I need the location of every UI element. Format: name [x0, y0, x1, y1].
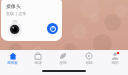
staticText: 智能 — [85, 61, 93, 66]
staticText: 发现 — [59, 61, 67, 66]
staticText: 商城 — [34, 61, 42, 66]
staticText: 我的家 — [7, 61, 18, 66]
button[interactable]: 发现 — [50, 50, 76, 68]
staticText: 在线 | 正常 — [6, 11, 27, 16]
button[interactable]: Camera device — [6, 19, 24, 37]
staticText: 我的 — [111, 61, 119, 66]
button[interactable]: 我的 — [102, 50, 128, 68]
button[interactable]: 摄像头 — [1, 0, 62, 41]
button[interactable]: 商城 — [25, 50, 50, 68]
button[interactable]: 智能 — [76, 50, 102, 68]
staticText: 摄像头 — [6, 3, 21, 9]
button[interactable]: Power toggle — [47, 23, 58, 34]
button[interactable]: 我的家 — [0, 50, 25, 68]
